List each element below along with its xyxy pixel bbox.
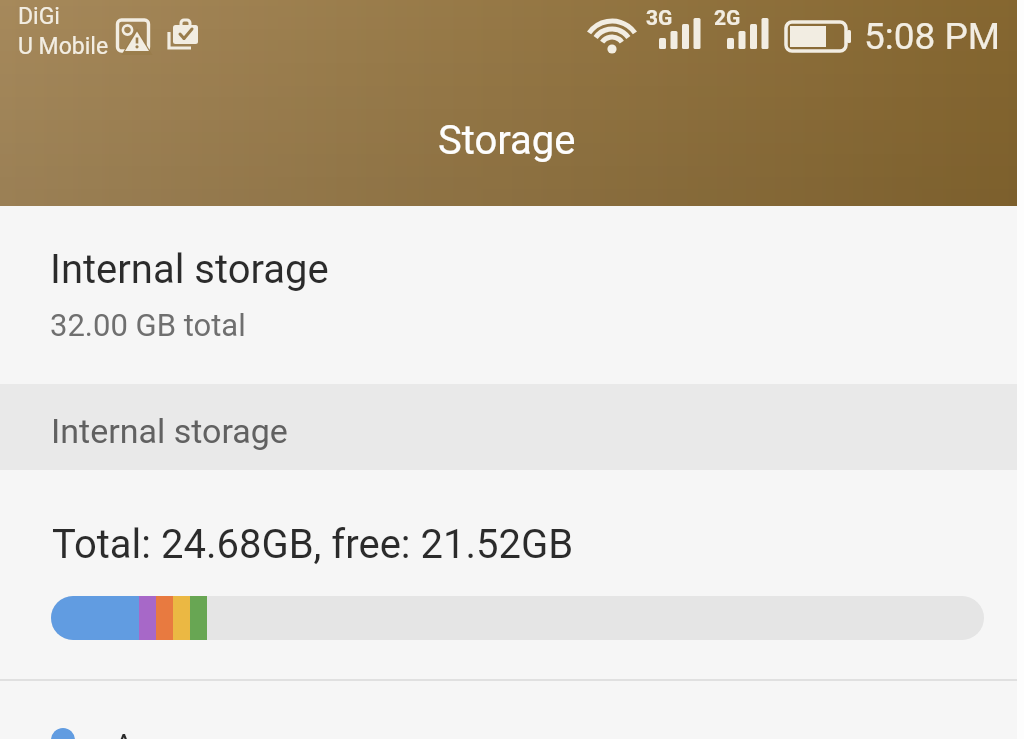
staticText: Total: 24.68GB, free: 21.52GB (52, 521, 574, 568)
staticText: Apps (114, 727, 183, 739)
button[interactable] (0, 206, 1024, 384)
staticText: DiGi (18, 3, 60, 30)
staticText: 5:08 PM (864, 15, 1001, 58)
staticText: 3G (646, 6, 673, 31)
button[interactable] (0, 681, 1024, 739)
button[interactable] (0, 470, 1024, 680)
staticText: U Mobile (18, 33, 109, 60)
staticText: Internal storage (51, 411, 288, 451)
staticText: Internal storage (50, 246, 329, 293)
staticText: Storage (438, 117, 576, 164)
staticText: 2G (714, 6, 741, 31)
staticText: 32.00 GB total (50, 307, 246, 343)
